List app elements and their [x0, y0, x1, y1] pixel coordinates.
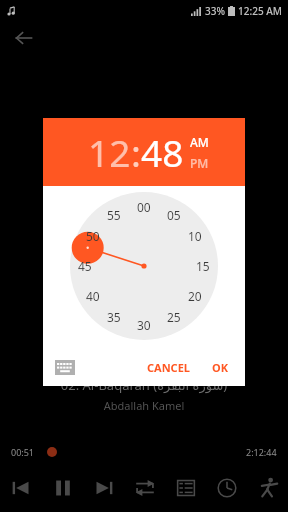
staticText: 40 — [86, 288, 100, 304]
staticText: 30 — [137, 317, 151, 333]
button[interactable]: Back — [8, 22, 40, 54]
button[interactable]: Repeat — [124, 468, 165, 508]
button[interactable]: Pause — [42, 468, 83, 508]
staticText: 02. Al-Baqarah (سورة البقرة) — [0, 376, 288, 394]
staticText: 55 — [107, 207, 121, 223]
staticText: 10 — [188, 228, 202, 244]
staticText: 12:25 AM — [238, 4, 282, 18]
button[interactable]: 12 — [88, 127, 131, 177]
button[interactable]: Playlist — [165, 468, 206, 508]
button[interactable]: Minute dial — [70, 192, 218, 340]
staticText: 20 — [188, 288, 202, 304]
button[interactable]: Walk mode — [247, 468, 288, 508]
staticText: 35 — [107, 309, 121, 325]
staticText: 25 — [167, 309, 181, 325]
button[interactable]: Sleep timer — [206, 468, 247, 508]
staticText: Abdallah Kamel — [0, 398, 288, 413]
button[interactable]: Previous — [0, 468, 42, 508]
button[interactable]: PM — [190, 155, 209, 171]
staticText: 15 — [196, 258, 210, 274]
button[interactable]: 48 — [141, 127, 184, 177]
button[interactable]: AM — [190, 134, 209, 150]
button[interactable]: CANCEL — [142, 356, 195, 379]
staticText: 00:51 — [11, 446, 35, 458]
button[interactable]: Next — [83, 468, 124, 508]
button[interactable]: OK — [207, 356, 234, 379]
staticText: 50 — [86, 228, 100, 244]
button[interactable]: Switch to keyboard input — [51, 353, 79, 381]
staticText: : — [131, 127, 141, 177]
staticText: 00 — [137, 199, 151, 215]
staticText: 05 — [167, 207, 181, 223]
staticText: 45 — [78, 258, 92, 274]
staticText: 2:12:44 — [246, 446, 277, 458]
staticText: 33% — [205, 4, 225, 18]
